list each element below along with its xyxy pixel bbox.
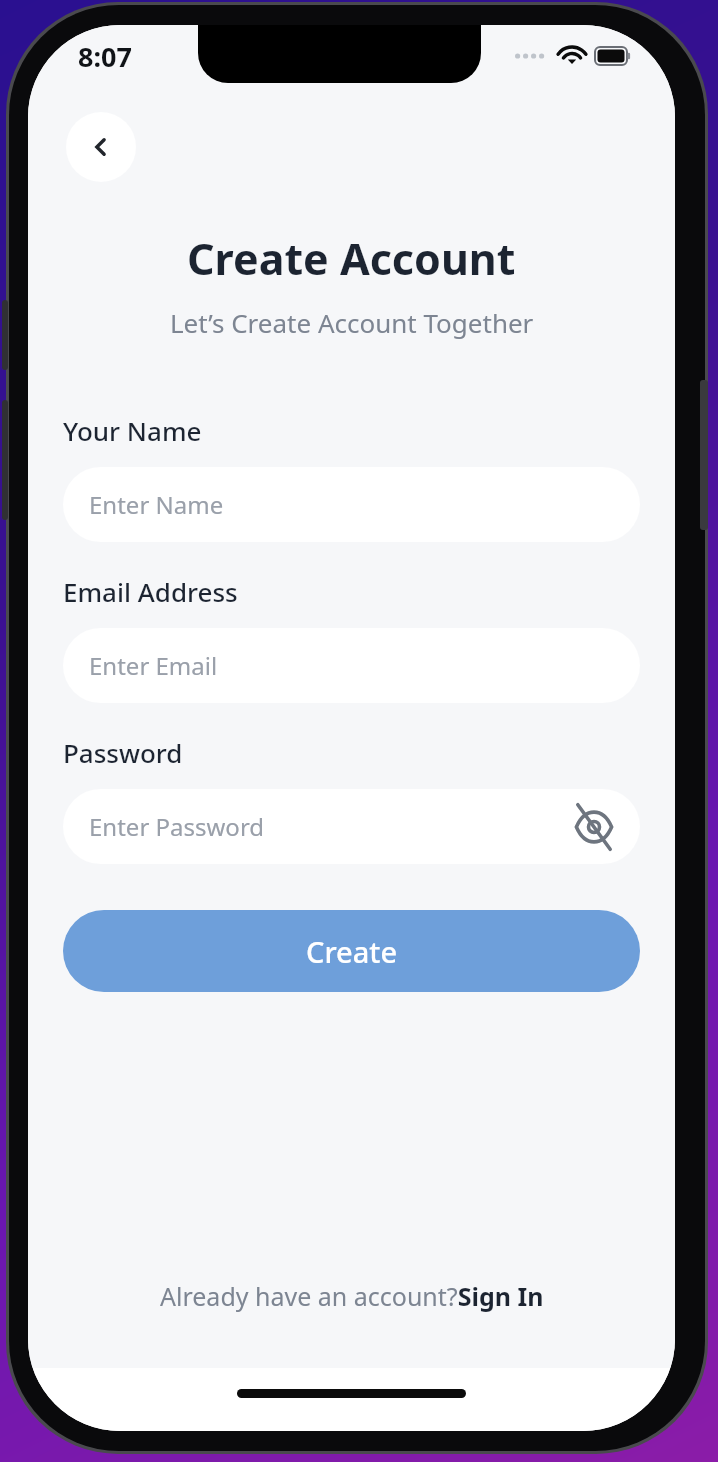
button[interactable]: Create: [63, 910, 640, 992]
staticText: Already have an account?Sign In: [160, 1279, 544, 1313]
button[interactable]: Back: [66, 112, 136, 182]
button[interactable]: Enter Name: [63, 467, 640, 542]
staticText: 8:07: [78, 38, 132, 75]
staticText: Create Account: [187, 229, 516, 288]
button[interactable]: Already have an account?Sign In: [28, 1279, 675, 1313]
staticText: Enter Email: [89, 649, 218, 682]
staticText: Create: [306, 932, 398, 971]
staticText: Your Name: [63, 413, 202, 448]
button[interactable]: Enter Email: [63, 628, 640, 703]
staticText: Let’s Create Account Together: [170, 305, 534, 340]
button[interactable]: Show password: [570, 803, 618, 851]
button[interactable]: Enter Password: [63, 789, 640, 864]
staticText: Password: [63, 735, 183, 770]
staticText: Enter Password: [89, 810, 265, 843]
staticText: Email Address: [63, 574, 238, 609]
staticText: Enter Name: [89, 488, 224, 521]
